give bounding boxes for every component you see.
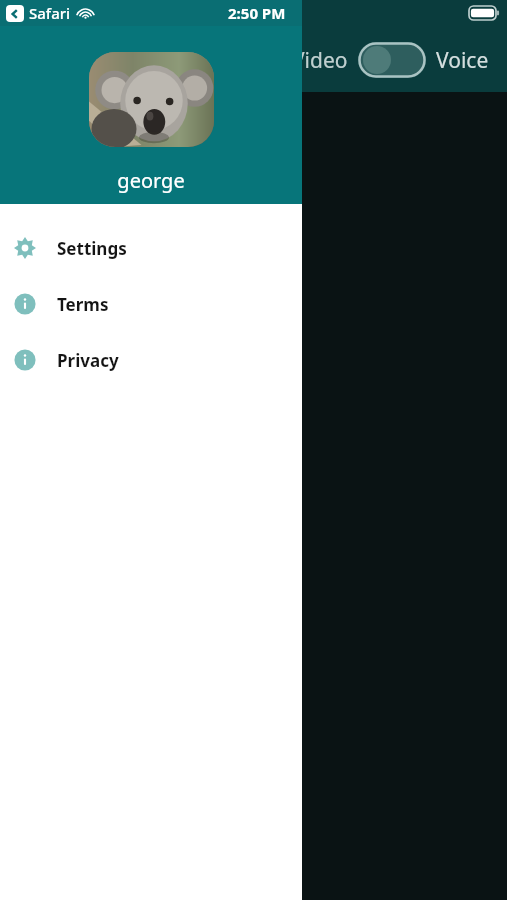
staticText: Settings: [57, 237, 127, 260]
staticText: 2:50 PM: [228, 3, 286, 23]
button[interactable]: Back to Safari: [6, 5, 24, 22]
staticText: Safari: [29, 3, 71, 23]
button[interactable]: Profile photo: [89, 52, 214, 147]
staticText: Voice: [436, 46, 489, 75]
button[interactable]: Terms: [0, 276, 302, 332]
staticText: Terms: [57, 293, 109, 316]
button[interactable]: Video or Voice toggle: [358, 42, 426, 78]
button[interactable]: Settings: [0, 220, 302, 276]
staticText: george: [117, 167, 185, 194]
button[interactable]: Privacy: [0, 332, 302, 388]
staticText: Privacy: [57, 349, 119, 372]
staticText: Video: [292, 46, 348, 75]
